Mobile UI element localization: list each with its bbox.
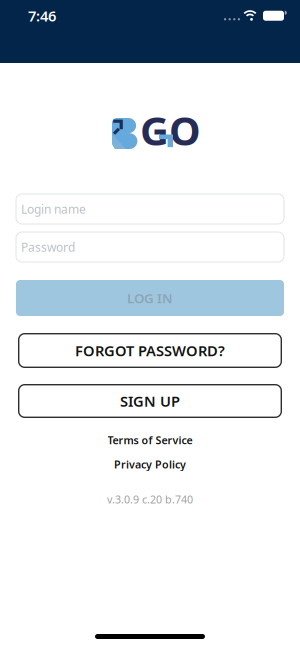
button[interactable]: FORGOT PASSWORD? [0, 333, 300, 368]
button[interactable]: Login name [0, 194, 300, 224]
staticText: Password [21, 239, 75, 255]
staticText: Privacy Policy [114, 457, 186, 471]
staticText: v.3.0.9 c.20 b.740 [107, 492, 193, 506]
staticText: Terms of Service [107, 433, 192, 447]
button[interactable]: LOG IN [0, 280, 300, 316]
button[interactable]: SIGN UP [0, 384, 300, 418]
staticText: Login name [21, 201, 86, 217]
button[interactable]: Terms of Service [107, 433, 192, 447]
staticText: SIGN UP [120, 391, 180, 411]
button[interactable]: Privacy Policy [114, 457, 186, 471]
staticText: GO [140, 103, 201, 156]
staticText: FORGOT PASSWORD? [75, 341, 225, 360]
staticText: LOG IN [127, 289, 173, 307]
button[interactable]: Password [0, 232, 300, 262]
staticText: 7:46 [28, 6, 56, 25]
